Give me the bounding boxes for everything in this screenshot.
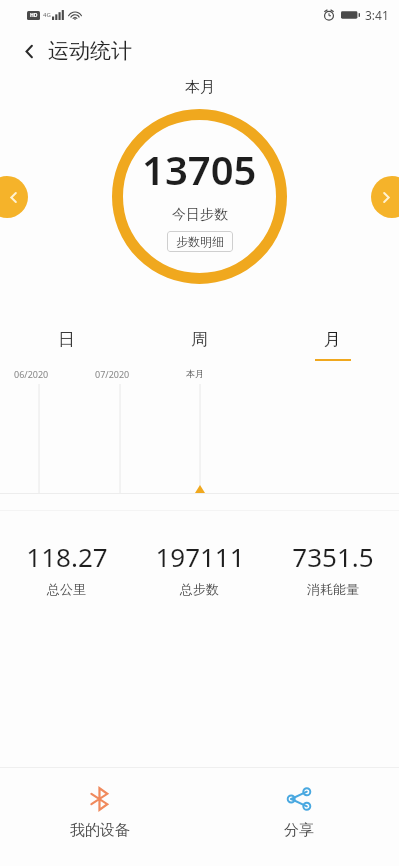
staticText: 3:41 xyxy=(365,7,389,23)
staticText: 本月 xyxy=(185,78,215,97)
staticText: 总公里 xyxy=(47,581,86,597)
staticText: 4G xyxy=(43,11,51,19)
staticText: 197111 xyxy=(155,539,245,574)
staticText: 周 xyxy=(191,329,208,350)
staticText: 13705 xyxy=(142,142,257,196)
button[interactable]: Back xyxy=(0,30,399,72)
other: Share xyxy=(286,786,312,812)
staticText: 06/2020 xyxy=(14,368,49,380)
button[interactable]: 118.27 xyxy=(0,539,133,597)
button[interactable]: 7351.5 xyxy=(266,539,399,597)
staticText: 消耗能量 xyxy=(307,581,359,597)
staticText: 步数明细 xyxy=(176,234,224,249)
button[interactable]: Next xyxy=(371,176,399,218)
staticText: 总步数 xyxy=(180,581,219,597)
staticText: 分享 xyxy=(284,821,314,840)
staticText: HD xyxy=(30,12,38,19)
button[interactable]: 日 xyxy=(0,322,133,361)
staticText: 118.27 xyxy=(26,539,108,574)
button[interactable]: 月 xyxy=(266,322,399,361)
staticText: 运动统计 xyxy=(48,38,132,64)
staticText: 今日步数 xyxy=(172,206,228,224)
staticText: 我的设备 xyxy=(70,821,130,840)
button[interactable]: Share xyxy=(199,768,399,840)
button[interactable]: My device xyxy=(0,768,199,840)
button[interactable]: 周 xyxy=(133,322,266,361)
staticText: 本月 xyxy=(186,368,204,379)
button[interactable]: Back xyxy=(12,34,46,68)
staticText: 月 xyxy=(324,329,341,350)
staticText: 日 xyxy=(58,329,75,350)
button[interactable]: Previous xyxy=(0,176,28,218)
staticText: 7351.5 xyxy=(292,539,374,574)
staticText: 07/2020 xyxy=(95,368,130,380)
button[interactable]: 步数明细 xyxy=(167,231,233,252)
other: My device xyxy=(87,786,113,812)
button[interactable]: 197111 xyxy=(133,539,266,597)
